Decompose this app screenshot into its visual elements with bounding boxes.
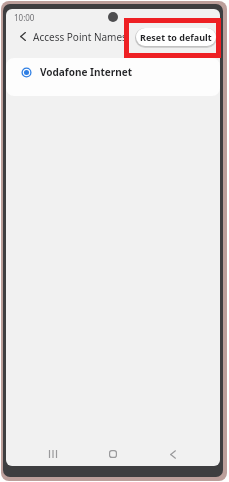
staticText: 10:00 (14, 12, 35, 23)
button[interactable]: Navigate up (14, 28, 31, 45)
staticText: Vodafone Internet (40, 65, 133, 79)
button[interactable]: Home (102, 443, 124, 465)
button[interactable]: Vodafone Internet (6, 58, 220, 86)
button[interactable]: Back (162, 443, 184, 465)
staticText: Reset to default (140, 31, 212, 43)
button[interactable]: Reset to default (136, 28, 216, 46)
staticText: Access Point Names (33, 30, 127, 44)
button[interactable]: Recent apps (42, 443, 64, 465)
